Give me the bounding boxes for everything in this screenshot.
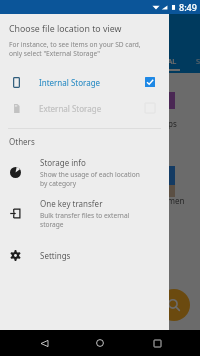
staticText: by category <box>40 179 77 188</box>
staticText: storage <box>40 220 64 229</box>
staticText: Documents <box>148 195 186 217</box>
staticText: External Storage <box>39 103 102 114</box>
staticText: SD CARD <box>196 56 200 66</box>
button[interactable]: External Storage <box>0 96 169 120</box>
staticText: Bulk transfer files to external <box>40 211 130 220</box>
staticText: Choose file location to view <box>9 23 122 35</box>
staticText: One key transfer <box>40 198 103 209</box>
button[interactable]: Internal Storage <box>0 70 169 94</box>
staticText: Show the usage of each location <box>40 170 140 179</box>
button[interactable]: Recent apps <box>144 330 170 356</box>
button[interactable]: Back <box>31 330 57 356</box>
staticText: Settings <box>40 250 71 261</box>
button[interactable] <box>0 194 169 236</box>
staticText: INTERNAL <box>140 56 177 66</box>
staticText: Apps <box>158 118 177 129</box>
button[interactable]: Home <box>87 330 113 356</box>
staticText: Storage info <box>40 157 86 168</box>
button[interactable]: Search <box>158 289 190 321</box>
button[interactable] <box>0 246 169 268</box>
staticText: only select "External Storage" <box>9 49 100 58</box>
button[interactable] <box>0 153 169 195</box>
staticText: Internal Storage <box>39 77 101 88</box>
staticText: Others <box>9 136 35 147</box>
staticText: 8:49 <box>179 1 197 13</box>
staticText: For instance, to see items on your SD ca… <box>9 40 141 49</box>
